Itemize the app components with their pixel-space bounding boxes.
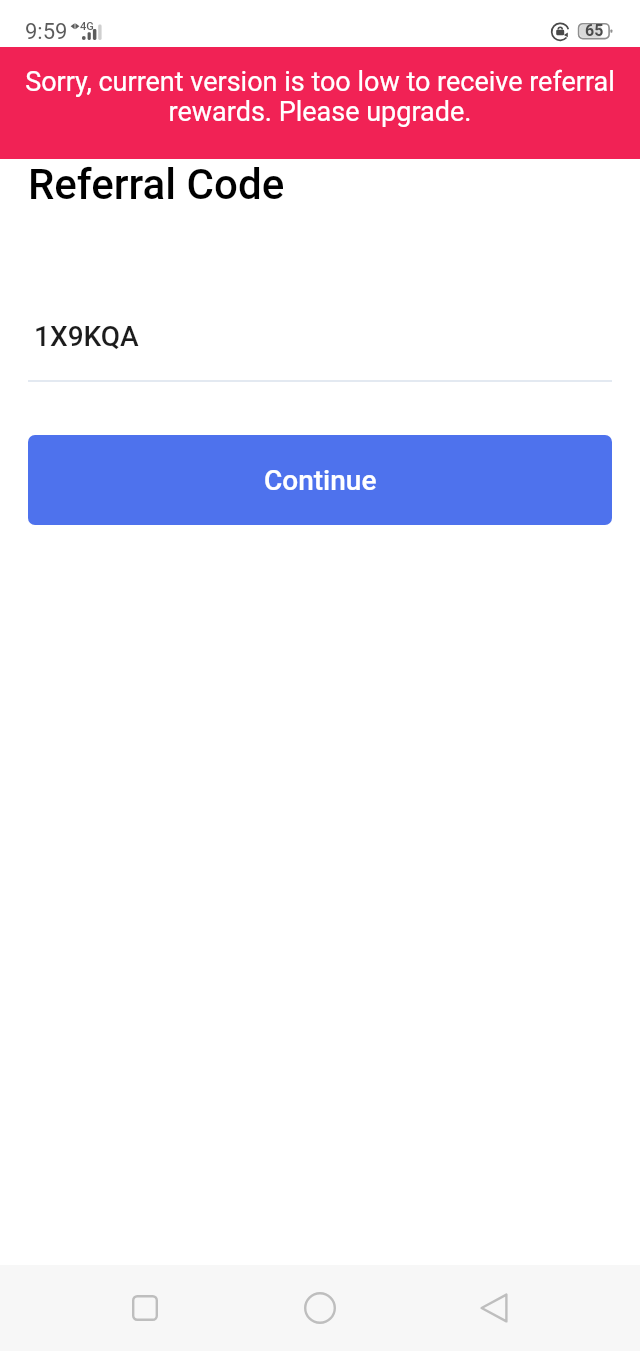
- button[interactable]: Recent apps: [105, 1268, 185, 1348]
- staticText: Continue: [264, 464, 377, 497]
- staticText: 1X9KQA: [34, 320, 139, 353]
- staticText: 4G: [80, 20, 94, 33]
- staticText: Referral Code: [28, 160, 285, 209]
- button[interactable]: Back: [454, 1268, 534, 1348]
- staticText: Sorry, current version is too low to rec…: [24, 66, 616, 128]
- button[interactable]: Continue: [28, 435, 612, 525]
- staticText: 9:59: [25, 19, 68, 45]
- staticText: 65: [585, 21, 604, 40]
- button[interactable]: Home: [280, 1268, 360, 1348]
